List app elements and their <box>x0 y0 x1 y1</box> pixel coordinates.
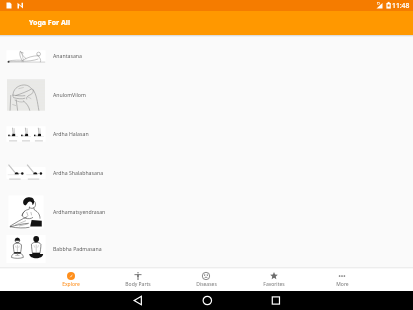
button[interactable]: Babbha Padmasana <box>0 231 413 266</box>
staticText: AnulomVilom <box>53 91 86 98</box>
button[interactable]: AnulomVilom <box>0 75 413 114</box>
staticText: Explore <box>62 281 80 288</box>
button[interactable]: Diseases <box>172 267 240 291</box>
staticText: Anantasana <box>53 52 82 59</box>
staticText: Babbha Padmasana <box>53 245 102 252</box>
button[interactable]: Ardha Shalabhasana <box>0 153 413 192</box>
staticText: Ardha Halasan <box>53 130 89 137</box>
button[interactable]: Ardha Halasan <box>0 114 413 153</box>
staticText: Body Parts <box>125 281 151 288</box>
staticText: Favorites <box>263 281 285 288</box>
button[interactable]: More <box>308 267 376 291</box>
button[interactable]: Explore <box>37 267 104 291</box>
staticText: Ardhamatsyendrasan <box>53 208 106 215</box>
button[interactable]: Body Parts <box>104 267 172 291</box>
staticText: Ardha Shalabhasana <box>53 169 104 176</box>
staticText: Yoga For All <box>29 18 71 28</box>
staticText: 11:48 <box>392 1 410 10</box>
staticText: More <box>336 281 349 288</box>
staticText: Diseases <box>196 281 217 288</box>
button[interactable]: Ardhamatsyendrasan <box>0 192 413 231</box>
button[interactable]: Favorites <box>240 267 308 291</box>
button[interactable]: Anantasana <box>0 36 413 75</box>
